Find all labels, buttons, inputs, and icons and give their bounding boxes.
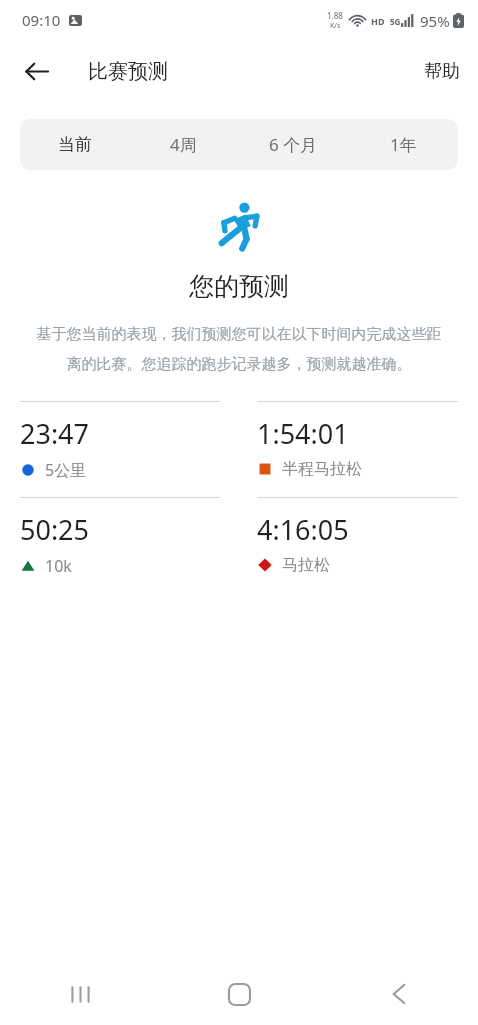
button[interactable]: 6 个月 <box>238 119 348 170</box>
button[interactable]: 4周 <box>129 119 238 170</box>
staticText: 您的预测 <box>0 271 478 302</box>
staticText: 1.88 <box>327 10 343 21</box>
staticText: 当前 <box>58 134 92 155</box>
staticText: 1年 <box>390 133 417 156</box>
button[interactable]: 4:16:05 <box>257 497 458 575</box>
staticText: 基于您当前的表现，我们预测您可以在以下时间内完成这些距离的比赛。您追踪的跑步记录… <box>34 325 444 373</box>
button[interactable]: 23:47 <box>20 401 220 481</box>
button[interactable]: 返回 <box>12 47 60 95</box>
button[interactable]: 当前 <box>20 119 129 170</box>
button[interactable]: 1:54:01 <box>257 401 458 479</box>
staticText: 23:47 <box>20 415 90 452</box>
staticText: HD <box>371 15 385 27</box>
staticText: 4周 <box>170 133 197 156</box>
staticText: 1:54:01 <box>257 415 349 452</box>
button[interactable]: 最近任务 <box>0 963 160 1025</box>
staticText: 09:10 <box>22 10 61 30</box>
staticText: K/s <box>330 21 341 31</box>
staticText: 10k <box>45 555 72 577</box>
staticText: 半程马拉松 <box>282 459 362 479</box>
button[interactable]: 帮助 <box>406 50 478 93</box>
button[interactable]: 50:25 <box>20 497 220 577</box>
staticText: 50:25 <box>20 511 90 548</box>
button[interactable]: 返回 <box>319 963 478 1025</box>
button[interactable]: 主页 <box>160 963 319 1025</box>
staticText: 4:16:05 <box>257 511 349 548</box>
staticText: 马拉松 <box>282 555 330 575</box>
staticText: 95% <box>420 11 450 31</box>
button[interactable]: 1年 <box>348 119 458 170</box>
staticText: 5公里 <box>45 459 87 481</box>
staticText: 6 个月 <box>269 133 318 156</box>
staticText: 帮助 <box>424 60 460 83</box>
staticText: 比赛预测 <box>88 59 168 84</box>
staticText: 5G <box>390 16 401 27</box>
